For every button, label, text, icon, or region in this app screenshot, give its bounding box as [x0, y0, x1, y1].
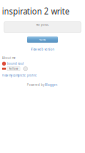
- button[interactable]: View web version: [30, 48, 54, 51]
- staticText: About me: [2, 56, 16, 60]
- button[interactable]: Blogger: [45, 83, 57, 87]
- staticText: .: [57, 83, 58, 87]
- button[interactable]: View my complete profile: [2, 74, 37, 77]
- button[interactable]: Follow: [7, 67, 20, 71]
- staticText: Home: [38, 38, 46, 41]
- staticText: View my complete profile: [2, 74, 37, 77]
- staticText: View web version: [30, 48, 54, 51]
- staticText: bound soul: [7, 62, 24, 65]
- button[interactable]: bound soul: [2, 62, 24, 66]
- staticText: Powered by: [27, 83, 45, 87]
- staticText: Blogger: [45, 83, 57, 87]
- staticText: inspiration 2 write: [2, 6, 70, 17]
- staticText: Follow: [9, 67, 18, 70]
- staticText: No posts.: [36, 23, 49, 26]
- button[interactable]: Home: [27, 37, 58, 43]
